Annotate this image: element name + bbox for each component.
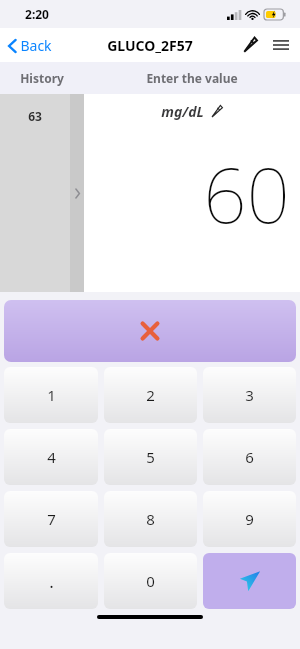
button[interactable]: 0 (104, 553, 197, 609)
staticText: 63 (28, 108, 42, 124)
staticText: 3 (245, 385, 254, 405)
staticText: History (20, 70, 64, 86)
staticText: Back (20, 36, 52, 55)
button[interactable]: 2 (104, 367, 197, 423)
button[interactable]: Menu (266, 30, 296, 60)
staticText: Enter the value (146, 70, 238, 86)
button[interactable]: . (4, 553, 98, 609)
button[interactable]: 63 (0, 94, 70, 292)
button[interactable]: 5 (104, 429, 197, 485)
button[interactable]: mg/dL (161, 102, 224, 121)
button[interactable]: Expand history (70, 94, 84, 292)
staticText: 7 (47, 509, 56, 529)
staticText: 4 (47, 447, 56, 467)
staticText: 8 (146, 509, 155, 529)
button[interactable]: Send (203, 553, 296, 609)
button[interactable]: 1 (4, 367, 98, 423)
button[interactable]: Back (0, 32, 60, 59)
staticText: 2 (146, 385, 155, 405)
staticText: GLUCO_2F57 (107, 36, 193, 55)
staticText: 5 (146, 447, 155, 467)
button[interactable]: Clear (4, 300, 296, 362)
button[interactable]: Edit (236, 30, 266, 60)
staticText: 9 (245, 509, 254, 529)
staticText: 1 (47, 385, 56, 405)
button[interactable]: 8 (104, 491, 197, 547)
button[interactable]: 7 (4, 491, 98, 547)
staticText: 60 (203, 142, 290, 246)
staticText: 6 (245, 447, 254, 467)
staticText: 0 (146, 571, 155, 591)
staticText: mg/dL (161, 102, 204, 121)
button[interactable]: 6 (203, 429, 296, 485)
staticText: 2:20 (25, 6, 49, 22)
button[interactable]: 9 (203, 491, 296, 547)
button[interactable]: 3 (203, 367, 296, 423)
staticText: . (49, 570, 54, 593)
button[interactable]: 4 (4, 429, 98, 485)
